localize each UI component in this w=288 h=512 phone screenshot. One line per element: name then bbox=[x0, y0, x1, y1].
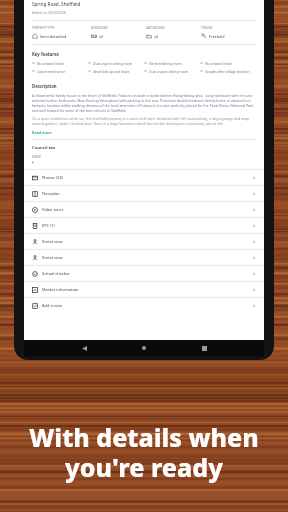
staticText: With details when you're ready bbox=[0, 420, 288, 484]
staticText: Photos (24) bbox=[42, 175, 63, 180]
staticText: BATHROOMS bbox=[146, 26, 165, 30]
staticText: Dual aspect sitting room bbox=[149, 69, 188, 74]
staticText: No onward chain bbox=[205, 61, 233, 66]
staticText: On a quiet residential cul de sac, this … bbox=[32, 116, 256, 126]
button[interactable]: Photos (24) bbox=[24, 170, 264, 185]
staticText: Read more bbox=[32, 130, 52, 135]
staticText: Add a note bbox=[42, 303, 63, 308]
staticText: No onward chain bbox=[37, 61, 65, 66]
staticText: Semi-detached bbox=[40, 34, 67, 39]
staticText: Video tours bbox=[42, 207, 64, 212]
button[interactable]: Back bbox=[76, 340, 92, 356]
staticText: School checker bbox=[42, 271, 70, 276]
staticText: Market information bbox=[42, 287, 79, 292]
staticText: BAND bbox=[32, 154, 42, 158]
button[interactable]: Market information bbox=[24, 282, 264, 297]
button[interactable]: Recents bbox=[196, 340, 212, 356]
staticText: Freehold bbox=[209, 34, 225, 39]
staticText: Kitchen/dining room bbox=[149, 61, 182, 66]
staticText: x2 bbox=[154, 34, 159, 39]
staticText: EPC (1) bbox=[42, 223, 55, 228]
staticText: TENURE bbox=[201, 26, 213, 30]
staticText: Low maintenance bbox=[37, 69, 66, 74]
button[interactable]: School checker bbox=[24, 266, 264, 281]
staticText: BEDROOMS bbox=[91, 26, 108, 30]
button[interactable]: Home bbox=[136, 340, 152, 356]
staticText: Description bbox=[32, 83, 57, 89]
staticText: Sought after village location bbox=[205, 69, 250, 74]
staticText: Added on 00/00/0000 bbox=[32, 10, 67, 15]
staticText: Floorplan bbox=[42, 191, 60, 196]
button[interactable]: Floorplan bbox=[24, 186, 264, 201]
staticText: Street view bbox=[42, 239, 63, 244]
button[interactable]: Video tours bbox=[24, 202, 264, 217]
staticText: Street view bbox=[42, 255, 63, 260]
staticText: x3 bbox=[99, 34, 104, 39]
staticText: Ideal lock up and leave bbox=[93, 69, 130, 74]
button[interactable]: EPC (1) bbox=[24, 218, 264, 233]
staticText: Spring Road, Sheffield bbox=[32, 1, 81, 7]
staticText: A characterful family house in the heart… bbox=[32, 93, 256, 113]
button[interactable]: Read more bbox=[32, 130, 52, 135]
staticText: Dual aspect sitting room bbox=[93, 61, 132, 66]
staticText: PROPERTY TYPE bbox=[32, 26, 55, 30]
button[interactable]: Street view bbox=[24, 250, 264, 265]
staticText: Key features bbox=[32, 51, 59, 57]
button[interactable]: Add a note bbox=[24, 298, 264, 313]
staticText: E bbox=[32, 160, 34, 165]
staticText: Council tax bbox=[32, 145, 56, 151]
button[interactable]: Street view bbox=[24, 234, 264, 249]
